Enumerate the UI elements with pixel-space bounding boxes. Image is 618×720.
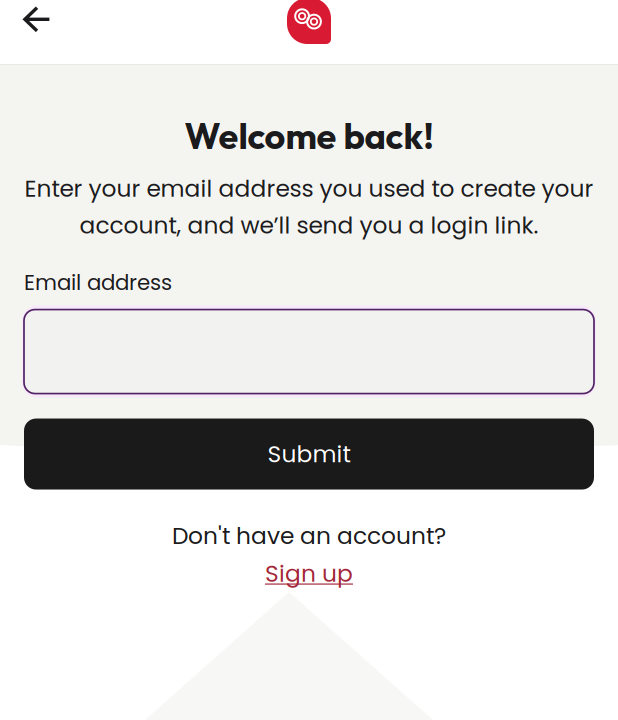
staticText: Welcome back! (184, 113, 433, 158)
staticText: Don't have an account? (172, 520, 446, 552)
button[interactable]: Sign up (261, 557, 357, 590)
staticText: Sign up (265, 557, 353, 590)
staticText: Email address (24, 268, 172, 298)
staticText: account, and we’ll send you a login link… (79, 209, 538, 242)
staticText: Submit (267, 438, 350, 470)
button[interactable]: Back (0, 0, 67, 64)
button[interactable]: Submit (0, 419, 618, 490)
button[interactable]: Home (287, 9, 331, 55)
staticText: Enter your email address you used to cre… (24, 172, 593, 205)
